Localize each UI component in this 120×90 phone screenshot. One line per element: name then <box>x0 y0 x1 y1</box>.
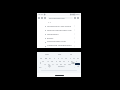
staticText: u <box>65 56 67 59</box>
staticText: z <box>44 62 46 65</box>
staticText: c <box>52 62 54 65</box>
button[interactable]: Options <box>73 33 75 35</box>
button[interactable]: Key k <box>70 59 74 62</box>
button[interactable]: Key i <box>68 56 72 59</box>
staticText: Working with your documents <box>47 40 73 43</box>
staticText: Getting started with the tool <box>47 29 73 32</box>
staticText: q <box>40 56 42 59</box>
staticText: Advanced configuration options <box>47 44 73 47</box>
button[interactable]: Key l <box>74 59 78 62</box>
staticText: English <box>58 65 65 68</box>
button[interactable]: Advanced configuration options <box>45 44 75 48</box>
button[interactable]: Key ↵ <box>76 65 80 68</box>
staticText: ⋮ <box>73 45 75 47</box>
button[interactable]: Options <box>73 25 75 27</box>
staticText: ⋮ <box>73 29 75 31</box>
staticText: ● ● ▮ 86% <box>70 13 80 16</box>
button[interactable]: Key v <box>55 62 59 65</box>
button[interactable]: Key ?1 <box>38 65 43 68</box>
staticText: a <box>42 59 44 62</box>
staticText: the <box>58 53 62 56</box>
staticText: n <box>64 62 66 65</box>
staticText: ⇧ <box>39 62 42 65</box>
button[interactable]: Key t <box>56 56 60 59</box>
button[interactable]: Key j <box>66 59 70 62</box>
staticText: o <box>73 56 75 59</box>
button[interactable]: Key z <box>43 62 47 65</box>
button[interactable]: Key d <box>50 59 54 62</box>
staticText: l <box>76 59 77 62</box>
staticText: Introduction and scope <box>47 25 71 28</box>
staticText: f <box>56 59 57 62</box>
button[interactable]: Key b <box>59 62 63 65</box>
staticText: ⋮ <box>73 25 75 27</box>
button[interactable]: Key h <box>62 59 66 62</box>
button[interactable]: Key u <box>64 56 68 59</box>
staticText: ↵ <box>77 65 80 68</box>
button[interactable]: Introduction and scope <box>45 24 75 28</box>
button[interactable]: Key o <box>72 56 76 59</box>
button[interactable]: Getting started with the tool <box>45 28 75 32</box>
staticText: w <box>45 56 47 59</box>
button[interactable]: that <box>44 53 50 56</box>
button[interactable]: Key f <box>54 59 58 62</box>
staticText: ☺ <box>48 65 51 68</box>
staticText: i <box>70 56 71 59</box>
button[interactable]: Space <box>51 65 72 68</box>
staticText: e <box>49 56 51 59</box>
staticText: b <box>60 62 62 65</box>
button[interactable]: Key c <box>51 62 55 65</box>
button[interactable]: Enter <box>75 63 80 65</box>
button[interactable]: Basics <box>45 36 75 40</box>
button[interactable]: the <box>57 53 63 56</box>
button[interactable]: Options <box>73 37 75 39</box>
button[interactable]: 1.1 <box>45 20 75 24</box>
staticText: docs.example.com <box>49 17 65 19</box>
button[interactable]: Key ⇧ <box>38 62 43 65</box>
button[interactable]: Key m <box>67 62 71 65</box>
staticText: h <box>63 59 65 62</box>
staticText: y <box>61 56 63 59</box>
button[interactable]: Key q <box>38 56 43 59</box>
button[interactable]: Key ⌫ <box>71 62 75 65</box>
staticText: ⋮ <box>73 37 75 39</box>
button[interactable]: Key s <box>45 59 50 62</box>
button[interactable]: Key ☺ <box>47 65 51 68</box>
button[interactable]: Key g <box>58 59 62 62</box>
staticText: that <box>45 53 49 56</box>
button[interactable]: Key x <box>47 62 51 65</box>
button[interactable]: Key e <box>48 56 52 59</box>
button[interactable]: Home <box>55 75 64 76</box>
staticText: Basics <box>47 37 54 40</box>
button[interactable]: Options <box>73 41 75 43</box>
staticText: Installation <box>47 33 59 36</box>
button[interactable]: Key p <box>76 56 80 59</box>
button[interactable]: Installation <box>45 32 75 36</box>
button[interactable]: Options <box>73 29 75 31</box>
button[interactable]: Working with your documents <box>45 40 75 44</box>
staticText: j <box>68 59 69 62</box>
staticText: p <box>77 56 79 59</box>
staticText: m <box>68 62 71 65</box>
button[interactable]: Options <box>73 45 75 47</box>
button[interactable]: Key a <box>40 59 45 62</box>
button[interactable]: Key w <box>43 56 48 59</box>
staticText: . <box>74 65 75 68</box>
staticText: ?1 <box>39 65 42 68</box>
button[interactable]: to <box>69 53 74 56</box>
button[interactable]: Key y <box>60 56 64 59</box>
button[interactable]: Key r <box>52 56 56 59</box>
button[interactable]: docs.example.com <box>48 17 73 19</box>
staticText: x <box>48 62 50 65</box>
button[interactable]: Key n <box>63 62 67 65</box>
